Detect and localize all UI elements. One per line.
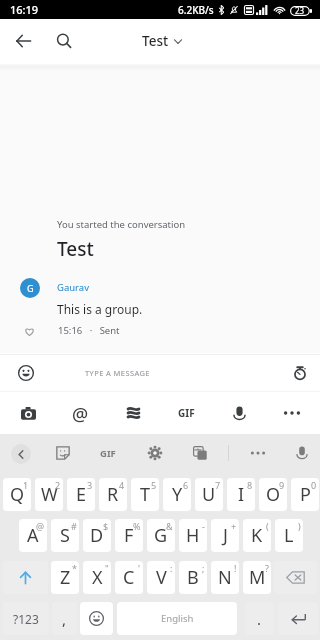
staticText: V — [156, 565, 167, 590]
staticText: ? — [265, 562, 269, 574]
staticText: 0 — [311, 479, 317, 491]
staticText: X — [92, 565, 103, 590]
button[interactable]: Camera — [2, 392, 54, 434]
button[interactable]: Back — [4, 22, 42, 60]
button[interactable]: K — [243, 519, 271, 552]
button[interactable]: More options — [266, 392, 318, 434]
staticText: O — [266, 482, 281, 507]
button[interactable]: Z — [51, 561, 79, 594]
button[interactable]: Translate — [182, 434, 218, 472]
button[interactable]: A — [19, 519, 47, 552]
button[interactable]: , — [52, 602, 77, 635]
button[interactable]: P — [291, 478, 319, 511]
staticText: ?123 — [13, 611, 39, 627]
button[interactable]: N — [211, 561, 239, 594]
staticText: R — [107, 482, 119, 507]
staticText: G — [154, 523, 168, 548]
staticText: ( — [266, 520, 269, 532]
button[interactable]: T — [131, 478, 159, 511]
button[interactable]: Q — [3, 478, 31, 511]
button[interactable]: ?123 — [3, 602, 49, 635]
button[interactable]: Backspace — [274, 561, 317, 594]
staticText: 2 — [55, 479, 61, 491]
staticText: Y — [172, 482, 183, 507]
button[interactable]: O — [259, 478, 287, 511]
button[interactable]: R — [99, 478, 127, 511]
staticText: P — [300, 482, 311, 507]
staticText: # — [71, 520, 77, 532]
button[interactable]: W — [35, 478, 63, 511]
button[interactable]: G — [147, 519, 175, 552]
staticText: 6.2KB/s — [178, 3, 214, 17]
staticText: 4 — [119, 479, 125, 491]
staticText: L — [284, 523, 294, 548]
button[interactable]: E — [67, 478, 95, 511]
button[interactable]: Settings — [137, 434, 173, 472]
button[interactable]: Microphone — [213, 392, 265, 434]
button[interactable]: Emoji — [8, 355, 44, 391]
button[interactable]: Space — [117, 602, 237, 635]
staticText: 7 — [215, 479, 221, 491]
button[interactable]: . — [245, 602, 274, 635]
staticText: You started the conversation — [57, 218, 186, 231]
staticText: @ — [36, 520, 45, 532]
staticText: 9 — [279, 479, 285, 491]
staticText: H — [186, 523, 200, 548]
button[interactable]: F — [115, 519, 143, 552]
staticText: T — [140, 482, 151, 507]
staticText: 3 — [87, 479, 93, 491]
staticText: & — [166, 520, 173, 532]
button[interactable]: D — [83, 519, 111, 552]
button[interactable]: Search — [45, 22, 83, 60]
staticText: N — [218, 565, 232, 590]
staticText: $ — [103, 520, 109, 532]
button[interactable]: X — [83, 561, 111, 594]
button[interactable]: Previous — [11, 444, 31, 464]
button[interactable]: S — [51, 519, 79, 552]
staticText: E — [76, 482, 87, 507]
staticText: ! — [234, 562, 237, 574]
button[interactable]: Emoji — [80, 602, 113, 635]
button[interactable]: Test — [142, 22, 182, 60]
button[interactable]: GIF keyboard — [90, 434, 126, 472]
staticText: . — [257, 609, 262, 629]
staticText: 8 — [247, 479, 253, 491]
button[interactable]: Voice input — [284, 434, 320, 472]
button[interactable]: Shift — [3, 561, 48, 594]
button[interactable]: Y — [163, 478, 191, 511]
staticText: W — [41, 482, 58, 507]
staticText: Gaurav — [57, 281, 90, 294]
staticText: English — [161, 612, 194, 625]
staticText: D — [90, 523, 104, 548]
staticText: U — [202, 482, 216, 507]
staticText: 1 — [23, 479, 29, 491]
button[interactable]: Stickers — [107, 392, 159, 434]
staticText: % — [133, 520, 141, 532]
button[interactable]: Stickers — [45, 434, 81, 472]
button[interactable]: C — [115, 561, 143, 594]
staticText: TYPE A MESSAGE — [85, 368, 150, 378]
staticText: - — [202, 520, 205, 532]
staticText: M — [249, 565, 266, 590]
staticText: 5 — [151, 479, 157, 491]
button[interactable]: I — [227, 478, 255, 511]
button[interactable]: U — [195, 478, 223, 511]
button[interactable]: H — [179, 519, 207, 552]
button[interactable]: V — [147, 561, 175, 594]
button[interactable]: J — [211, 519, 239, 552]
staticText: 23 — [295, 5, 305, 16]
button[interactable]: Timer — [282, 355, 318, 391]
staticText: Q — [10, 482, 25, 507]
button[interactable]: L — [275, 519, 303, 552]
button[interactable]: Mention — [54, 392, 106, 434]
staticText: C — [123, 565, 135, 590]
button[interactable]: More — [240, 434, 276, 472]
staticText: * — [72, 562, 77, 574]
button[interactable]: GIF — [160, 392, 212, 434]
staticText: ) — [298, 520, 301, 532]
staticText: ; — [202, 562, 205, 574]
button[interactable]: Enter — [278, 602, 318, 635]
staticText: 15:16 · Sent — [58, 324, 120, 337]
button[interactable]: M — [243, 561, 271, 594]
button[interactable]: B — [179, 561, 207, 594]
